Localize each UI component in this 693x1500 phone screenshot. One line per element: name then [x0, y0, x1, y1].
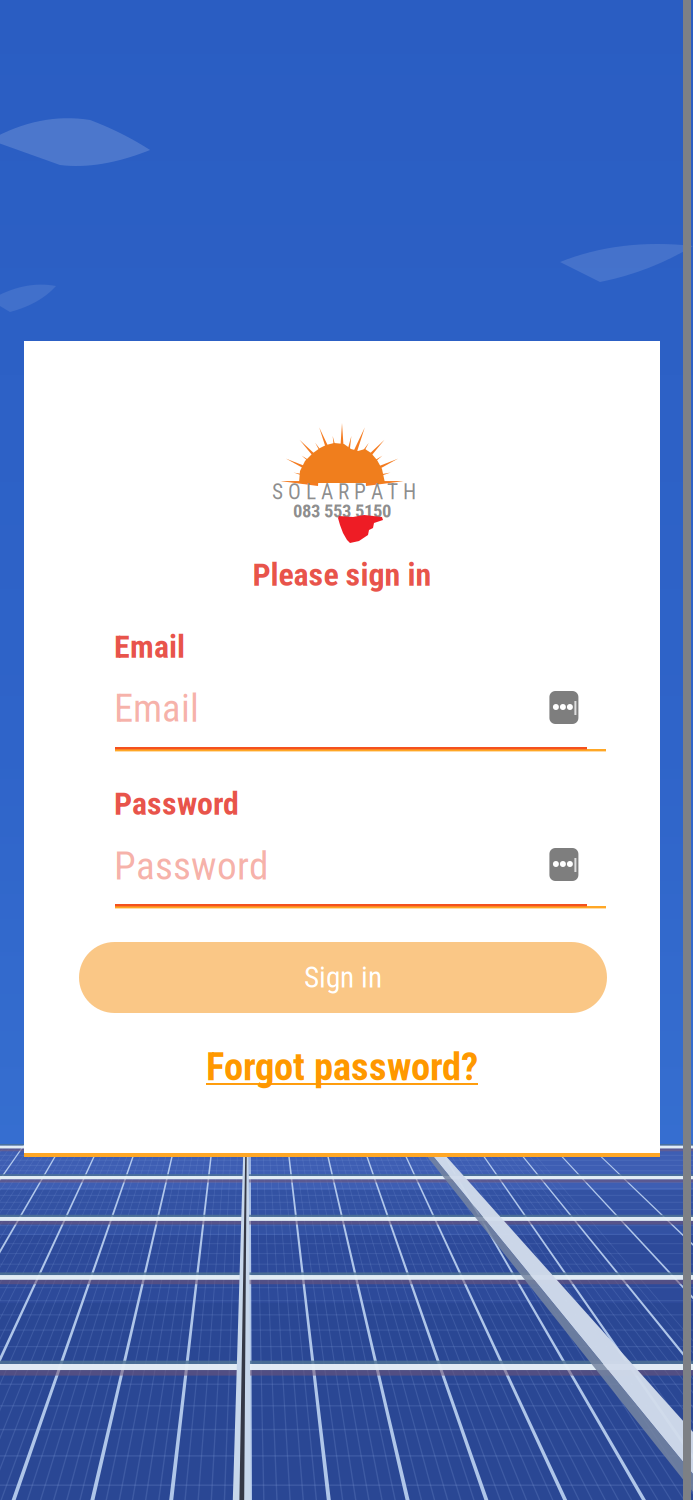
button[interactable]: Sign in [79, 942, 607, 1013]
staticText: Forgot password? [206, 1044, 478, 1090]
staticText: 083 553 5150 [293, 500, 391, 522]
staticText: Please sign in [252, 556, 431, 593]
staticText: S O L A R P A T H [272, 479, 416, 504]
staticText: Email [114, 628, 185, 665]
staticText: Password [114, 843, 269, 889]
staticText: Email [114, 686, 199, 731]
staticText: Password [114, 785, 239, 822]
button[interactable]: Suggest a saved password [549, 848, 578, 881]
button[interactable]: Suggest a saved password [549, 691, 578, 724]
staticText: Sign in [304, 960, 382, 995]
button[interactable]: Forgot password? [24, 1045, 660, 1089]
